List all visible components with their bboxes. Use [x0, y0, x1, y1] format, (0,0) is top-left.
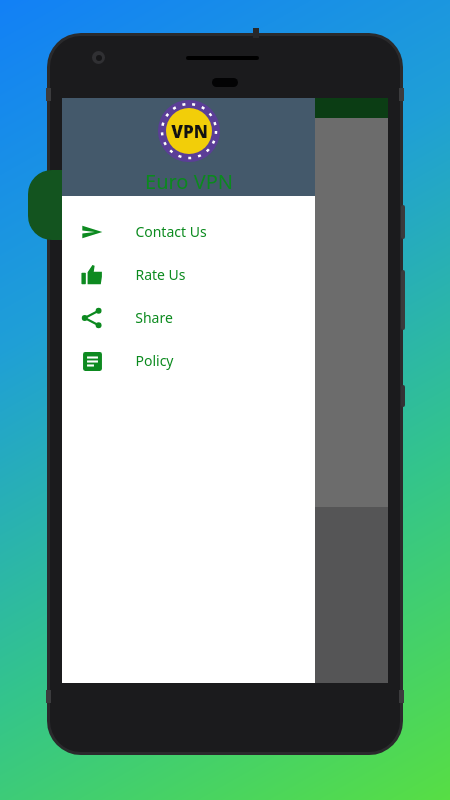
staticText: Policy	[135, 351, 174, 370]
button[interactable]: Contact Us	[62, 210, 315, 253]
other: Contact Us	[81, 221, 103, 243]
staticText: VPN	[171, 120, 208, 143]
staticText: Euro VPN	[145, 168, 233, 195]
other: Share	[81, 307, 103, 329]
button[interactable]: Policy	[62, 339, 315, 382]
other: Policy	[82, 351, 103, 372]
button[interactable]: Rate Us	[62, 253, 315, 296]
other: Rate Us	[81, 264, 103, 286]
button[interactable]: Share	[62, 296, 315, 339]
staticText: Share	[135, 308, 173, 327]
button[interactable]	[28, 170, 108, 240]
staticText: Contact Us	[135, 222, 207, 241]
staticText: Rate Us	[135, 265, 186, 284]
